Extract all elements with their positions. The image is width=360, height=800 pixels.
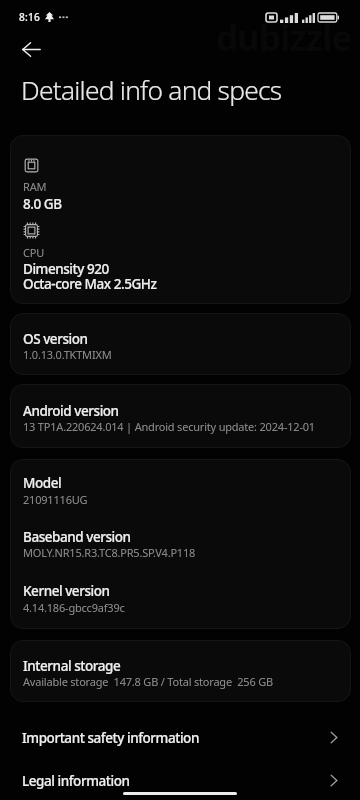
button[interactable]: Legal information <box>0 759 360 800</box>
staticText: 1.0.13.0.TKTMIXM <box>23 347 112 362</box>
staticText: 13 TP1A.220624.014 | Android security up… <box>23 419 315 434</box>
staticText: 8:16 <box>19 10 41 24</box>
button[interactable]: OS version <box>10 313 351 375</box>
button[interactable]: Model <box>10 459 351 629</box>
staticText: 4.14.186-gbcc9af39c <box>23 600 125 615</box>
staticText: Baseband version <box>23 528 131 546</box>
staticText: Kernel version <box>23 582 110 600</box>
staticText: Legal information <box>22 772 330 790</box>
button[interactable]: RAM <box>10 135 351 304</box>
staticText: MOLY.NR15.R3.TC8.PR5.SP.V4.P118 <box>23 545 196 560</box>
staticText: CPU <box>23 245 45 260</box>
button[interactable]: Important safety information <box>0 716 360 759</box>
staticText: Octa-core Max 2.5GHz <box>23 275 157 293</box>
staticText: Detailed info and specs <box>21 72 282 108</box>
staticText: RAM <box>23 179 47 194</box>
staticText: Dimensity 920 <box>23 260 109 278</box>
button[interactable]: Internal storage <box>10 640 351 702</box>
staticText: dubizzle <box>216 14 352 62</box>
staticText: Available storage 147.8 GB / Total stora… <box>23 674 273 689</box>
staticText: Internal storage <box>23 657 121 675</box>
button[interactable]: Back <box>15 33 47 65</box>
staticText: Android version <box>23 402 119 420</box>
staticText: 21091116UG <box>23 492 88 507</box>
staticText: 8.0 GB <box>23 195 62 213</box>
staticText: OS version <box>23 330 88 348</box>
button[interactable]: Android version <box>10 384 351 448</box>
staticText: Important safety information <box>22 729 330 747</box>
staticText: Model <box>23 474 62 492</box>
